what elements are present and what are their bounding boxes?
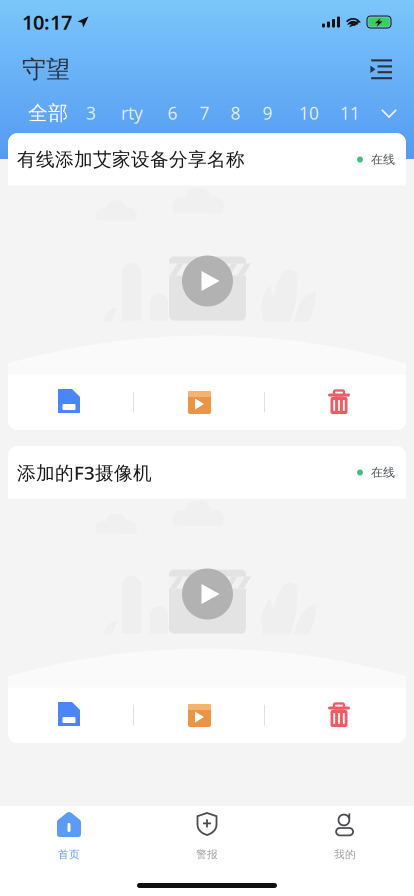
- button[interactable]: Snapshots: [8, 687, 130, 742]
- staticText: rty: [121, 101, 143, 124]
- staticText: 7: [199, 101, 209, 124]
- staticText: 11: [340, 101, 360, 124]
- button[interactable]: Expand filters: [369, 95, 407, 131]
- staticText: 警报: [196, 848, 218, 861]
- button[interactable]: 6: [154, 95, 191, 131]
- button[interactable]: 11: [331, 95, 369, 131]
- staticText: 全部: [28, 101, 68, 125]
- staticText: 在线: [371, 152, 395, 167]
- staticText: 守望: [22, 55, 70, 84]
- button[interactable]: 3: [73, 95, 109, 131]
- staticText: 10: [299, 101, 319, 124]
- button[interactable]: rty: [112, 95, 152, 131]
- button[interactable]: 10: [288, 95, 330, 131]
- staticText: 9: [262, 101, 272, 124]
- staticText: 8: [230, 101, 240, 124]
- button[interactable]: Device list: [361, 50, 401, 89]
- button[interactable]: 7: [186, 95, 223, 131]
- staticText: 添加的F3摄像机: [17, 460, 152, 485]
- staticText: 10:17: [22, 9, 72, 35]
- staticText: 有线添加艾家设备分享名称: [17, 148, 245, 171]
- button[interactable]: Delete: [272, 687, 406, 742]
- button[interactable]: Snapshots: [8, 374, 130, 429]
- button[interactable]: 我的: [276, 806, 414, 896]
- button[interactable]: 8: [217, 95, 254, 131]
- staticText: 6: [167, 101, 177, 124]
- staticText: 我的: [334, 848, 356, 861]
- button[interactable]: 9: [249, 95, 286, 131]
- button[interactable]: 警报: [138, 806, 276, 896]
- button[interactable]: Delete: [272, 374, 406, 429]
- button[interactable]: Recordings: [134, 687, 265, 742]
- staticText: 3: [86, 101, 96, 124]
- button[interactable]: Recordings: [134, 374, 265, 429]
- button[interactable]: 首页: [0, 806, 138, 896]
- staticText: 在线: [371, 465, 395, 480]
- staticText: 首页: [58, 848, 80, 861]
- button[interactable]: 全部: [26, 95, 70, 131]
